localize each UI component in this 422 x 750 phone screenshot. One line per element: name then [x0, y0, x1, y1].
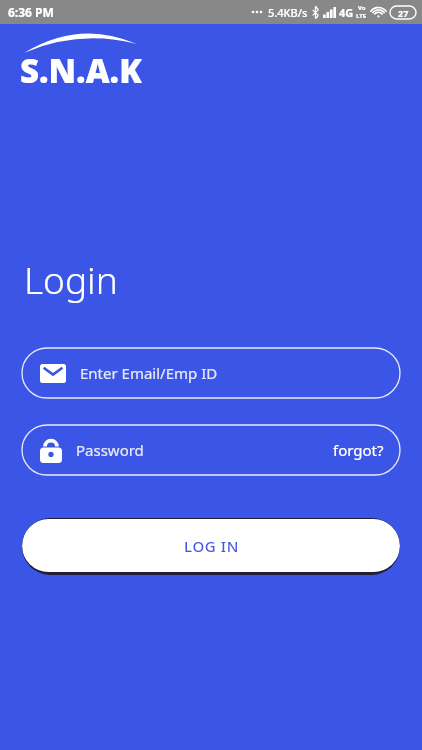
staticText: 4G	[339, 5, 354, 20]
staticText: LTE	[356, 12, 367, 20]
staticText: 6:36 PM	[8, 4, 54, 20]
button[interactable]: Email	[22, 348, 400, 398]
staticText: LOG IN	[184, 536, 239, 556]
staticText: Enter Email/Emp ID	[80, 363, 218, 383]
staticText: S.N.A.K	[20, 48, 142, 93]
staticText: Password	[76, 440, 144, 460]
staticText: 5.4KB/s	[268, 5, 308, 20]
staticText: Login	[24, 254, 118, 304]
button[interactable]: Password	[22, 425, 400, 475]
other: Password	[40, 437, 62, 463]
staticText: 27	[398, 7, 409, 19]
button[interactable]: forgot?	[333, 440, 384, 460]
other: Email	[40, 364, 66, 383]
button[interactable]: LOG IN	[22, 518, 400, 575]
staticText: Vo	[358, 4, 366, 12]
